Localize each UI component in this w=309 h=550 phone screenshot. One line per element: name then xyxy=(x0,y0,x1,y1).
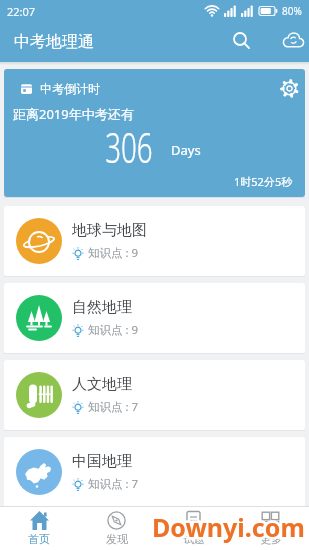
button[interactable]: 人文地理 xyxy=(4,360,305,430)
staticText: 306 xyxy=(105,118,168,169)
staticText: 知识点 : 9 xyxy=(88,322,139,338)
staticText: 距离2019年中考还有 xyxy=(13,105,134,123)
button[interactable]: 地球与地图 xyxy=(4,206,305,276)
staticText: 80% xyxy=(282,4,302,18)
button[interactable]: 首页 xyxy=(0,507,78,550)
staticText: 中考地理通 xyxy=(14,32,94,52)
button[interactable] xyxy=(279,26,307,54)
staticText: 知识点 : 9 xyxy=(88,245,139,261)
staticText: Days xyxy=(171,141,201,159)
staticText: 1时52分5秒 xyxy=(234,174,293,189)
staticText: 试题 xyxy=(183,532,205,546)
staticText: 知识点 : 7 xyxy=(88,399,139,415)
button[interactable]: 更多 xyxy=(232,507,309,550)
staticText: 中考倒计时 xyxy=(40,81,100,96)
staticText: 地球与地图 xyxy=(72,221,147,240)
staticText: 首页 xyxy=(28,532,50,546)
button[interactable]: 自然地理 xyxy=(4,283,305,353)
staticText: 发现 xyxy=(106,532,128,546)
staticText: Downyi.com xyxy=(152,510,305,544)
button[interactable]: 中考倒计时 xyxy=(4,69,305,197)
button[interactable]: 发现 xyxy=(78,507,155,550)
button[interactable]: 中国地理 xyxy=(4,437,305,507)
button[interactable] xyxy=(278,77,300,99)
staticText: 中国地理 xyxy=(72,452,132,471)
staticText: 更多 xyxy=(260,532,282,546)
button[interactable] xyxy=(227,26,255,54)
staticText: Downyi.com xyxy=(152,510,305,544)
staticText: 人文地理 xyxy=(72,375,132,394)
staticText: 知识点 : 7 xyxy=(88,476,139,492)
staticText: 22:07 xyxy=(7,4,36,19)
staticText: 自然地理 xyxy=(72,298,132,317)
button[interactable]: 试题 xyxy=(155,507,232,550)
